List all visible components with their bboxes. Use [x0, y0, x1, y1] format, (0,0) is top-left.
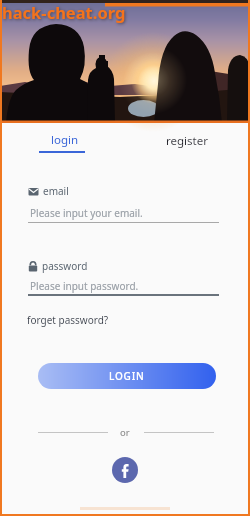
button[interactable]: login: [2, 127, 125, 157]
staticText: LOGIN: [109, 369, 145, 383]
staticText: login: [51, 132, 79, 148]
button[interactable]: [112, 457, 138, 483]
staticText: Please input your email.: [30, 206, 143, 220]
button[interactable]: [28, 200, 219, 224]
button[interactable]: register: [125, 127, 248, 157]
staticText: register: [166, 133, 208, 149]
button[interactable]: LOGIN: [38, 363, 216, 389]
staticText: or: [120, 426, 130, 439]
staticText: hack-cheat.org: [2, 1, 126, 23]
button[interactable]: forget password?: [27, 313, 109, 327]
staticText: Please input password.: [30, 279, 139, 293]
staticText: password: [42, 259, 88, 273]
staticText: email: [43, 184, 69, 198]
button[interactable]: [28, 273, 219, 296]
